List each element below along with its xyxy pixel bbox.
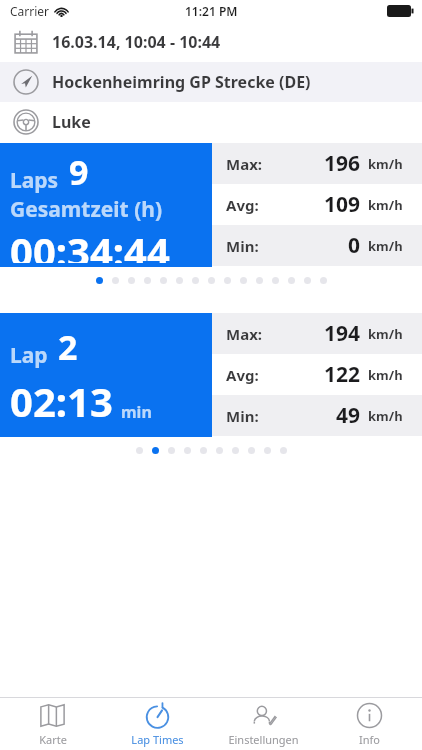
button[interactable]: Karte [0,698,105,750]
staticText: 00:34:44 [10,224,170,263]
staticText: Avg: [226,195,259,215]
button[interactable]: 16.03.14, 10:04 - 10:44 [0,22,422,62]
staticText: km/h [368,366,403,384]
staticText: Max: [226,324,263,344]
staticText: Min: [226,236,259,256]
button[interactable]: Lap [0,313,422,437]
staticText: 194 [324,319,361,348]
staticText: Luke [52,111,91,133]
staticText: 11:21 PM [185,3,238,19]
staticText: Hockenheimring GP Strecke (DE) [52,71,311,93]
staticText: 9 [69,149,89,195]
staticText: 122 [324,360,361,389]
staticText: Lap Times [131,732,184,747]
staticText: 16.03.14, 10:04 - 10:44 [52,31,221,53]
staticText: 109 [324,190,361,219]
staticText: km/h [368,237,403,255]
button[interactable]: Einstellungen [210,698,316,750]
staticText: Max: [226,154,263,174]
staticText: Lap [10,341,48,370]
staticText: km/h [368,155,403,173]
staticText: 2 [58,324,78,370]
staticText: 196 [324,149,361,178]
staticText: km/h [368,325,403,343]
button[interactable]: Info [316,698,422,750]
staticText: Laps [10,166,59,195]
staticText: 02:13 [10,374,113,428]
staticText: min [121,401,152,423]
staticText: km/h [368,407,403,425]
staticText: Einstellungen [228,732,299,747]
staticText: Carrier [10,3,50,19]
staticText: Min: [226,406,259,426]
staticText: Karte [39,732,67,747]
button[interactable]: Hockenheimring GP Strecke (DE) [0,62,422,102]
staticText: Avg: [226,365,259,385]
staticText: 0 [348,231,361,260]
button[interactable]: Lap Times [105,698,210,750]
staticText: Gesamtzeit (h) [10,195,163,224]
button[interactable]: Luke [0,102,422,142]
button[interactable]: Laps [0,143,422,267]
staticText: Info [359,732,380,747]
staticText: km/h [368,196,403,214]
staticText: 49 [336,401,361,430]
